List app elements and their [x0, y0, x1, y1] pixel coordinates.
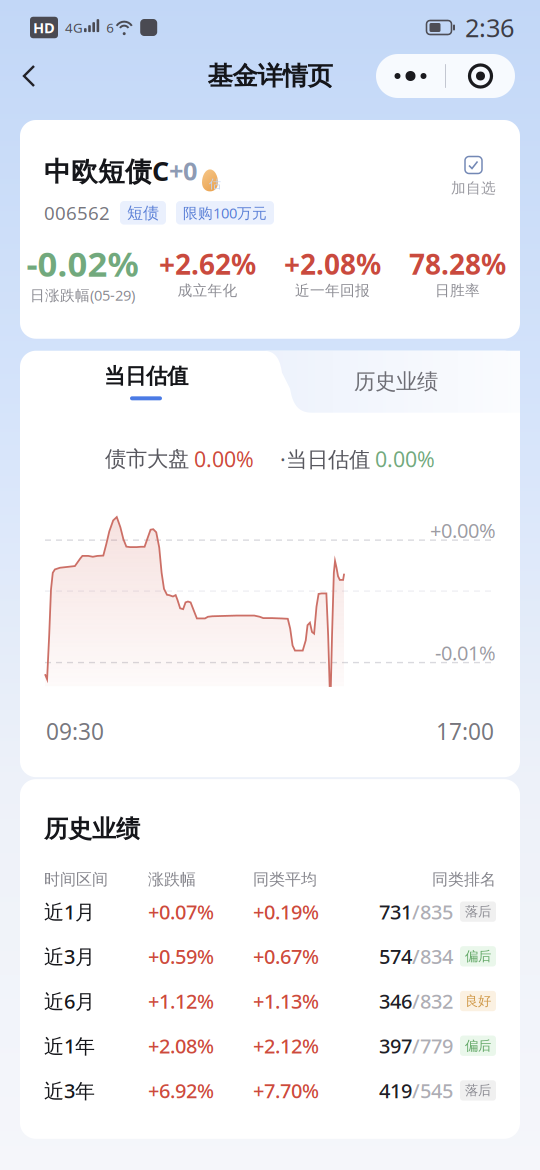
staticText: +0.59% — [148, 943, 214, 970]
staticText: 731 — [379, 898, 412, 925]
staticText: +0.67% — [253, 943, 319, 970]
staticText: 落后 — [465, 903, 491, 920]
staticText: 日涨跌幅(05-29) — [30, 285, 135, 305]
staticText: 落后 — [465, 1082, 491, 1099]
staticText: /779 — [412, 1032, 453, 1059]
staticText: 偏后 — [465, 1037, 491, 1054]
staticText: -0.01% — [435, 639, 496, 666]
staticText: 历史业绩 — [354, 369, 438, 395]
staticText: 09:30 — [46, 716, 104, 746]
staticText: 397 — [379, 1032, 412, 1059]
staticText: HD — [33, 18, 55, 37]
staticText: -0.02% — [26, 240, 138, 286]
staticText: 历史业绩 — [44, 814, 140, 844]
staticText: 中欧短债C — [44, 153, 169, 188]
staticText: 估 — [209, 177, 221, 191]
button[interactable]: 历史业绩 — [272, 351, 520, 413]
staticText: 近6月 — [44, 988, 95, 1014]
staticText: +1.12% — [148, 988, 214, 1014]
staticText: 6 — [106, 19, 114, 36]
staticText: /832 — [412, 988, 453, 1014]
staticText: 短债 — [127, 203, 159, 223]
staticText: 近3年 — [44, 1077, 95, 1104]
staticText: +6.92% — [148, 1077, 214, 1104]
staticText: +2.12% — [253, 1032, 319, 1059]
staticText: ·当日估值 — [280, 445, 370, 473]
staticText: 2:36 — [465, 11, 514, 44]
staticText: /545 — [412, 1077, 453, 1104]
staticText: 574 — [379, 943, 412, 970]
staticText: 4G — [65, 19, 83, 36]
button[interactable]: Back — [0, 48, 58, 104]
button[interactable]: 当日估值 — [20, 351, 272, 413]
staticText: 基金详情页 — [207, 60, 332, 91]
staticText: /834 — [412, 943, 453, 970]
staticText: 006562 — [44, 200, 110, 225]
staticText: +2.62% — [159, 245, 256, 283]
staticText: +0 — [169, 154, 197, 187]
staticText: +0.07% — [148, 898, 214, 925]
staticText: 债市大盘 — [105, 446, 189, 472]
staticText: 同类排名 — [432, 870, 496, 889]
staticText: 日胜率 — [435, 281, 480, 299]
staticText: 良好 — [465, 993, 491, 1009]
staticText: +2.08% — [284, 245, 381, 283]
staticText: 近1年 — [44, 1032, 95, 1059]
staticText: 近1月 — [44, 898, 95, 925]
staticText: +0.19% — [253, 898, 319, 925]
staticText: 0.00% — [375, 445, 435, 473]
staticText: 419 — [379, 1077, 412, 1104]
staticText: 同类平均 — [253, 870, 317, 889]
staticText: 346 — [379, 988, 412, 1014]
staticText: 时间区间 — [44, 870, 108, 889]
staticText: 近3月 — [44, 943, 95, 970]
staticText: 0.00% — [194, 445, 254, 473]
button[interactable]: More options — [376, 54, 515, 98]
staticText: /835 — [412, 898, 453, 925]
staticText: +2.08% — [148, 1032, 214, 1059]
staticText: 涨跌幅 — [148, 870, 196, 889]
staticText: 加自选 — [451, 179, 496, 197]
staticText: +7.70% — [253, 1077, 319, 1104]
staticText: +1.13% — [253, 988, 319, 1014]
staticText: +0.00% — [430, 517, 496, 544]
staticText: 近一年回报 — [295, 281, 370, 299]
staticText: 成立年化 — [177, 281, 237, 299]
staticText: 限购100万元 — [183, 203, 267, 223]
staticText: 17:00 — [436, 716, 494, 746]
staticText: 78.28% — [409, 245, 506, 283]
button[interactable]: 加自选 — [451, 153, 496, 197]
staticText: 偏后 — [465, 948, 491, 964]
staticText: 当日估值 — [104, 363, 188, 389]
